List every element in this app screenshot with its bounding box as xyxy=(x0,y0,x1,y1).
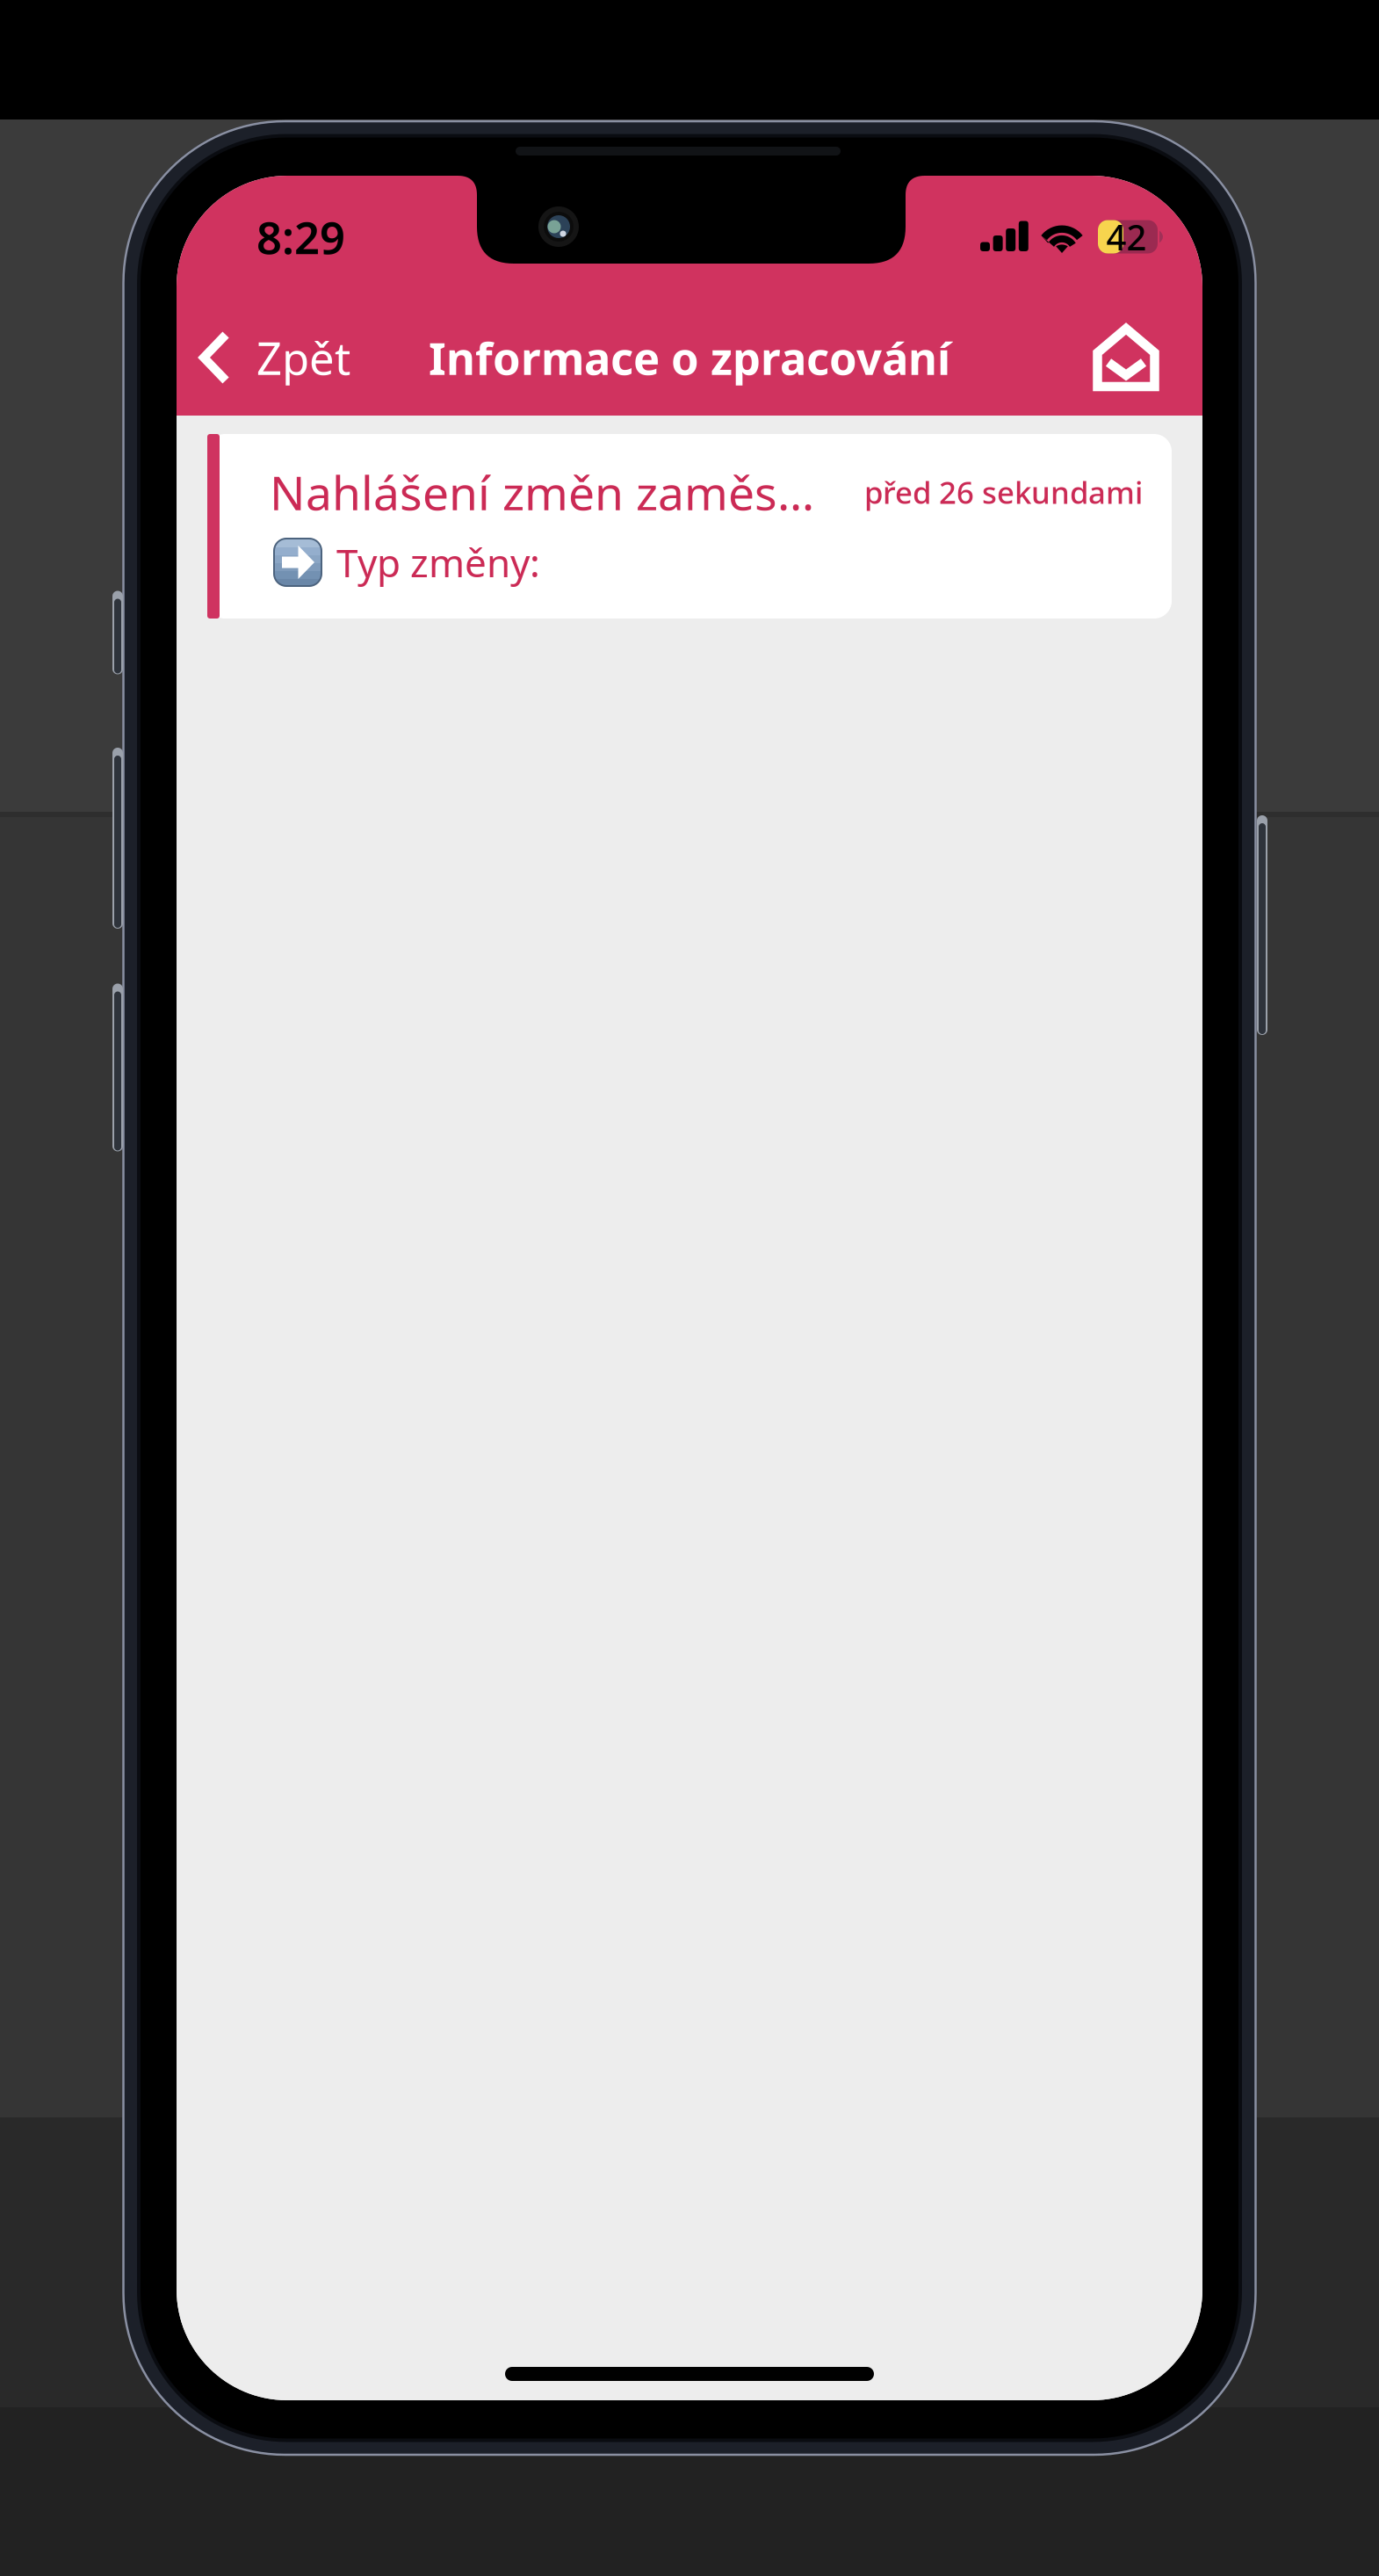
staticText: před 26 sekundami xyxy=(864,472,1143,512)
button[interactable]: Zpět xyxy=(177,316,370,399)
staticText: Zpět xyxy=(256,328,350,387)
button[interactable]: Nahlášení změn zaměs… xyxy=(207,434,1172,619)
staticText: Informace o zpracování xyxy=(429,328,950,387)
staticText: 42 xyxy=(1106,213,1147,260)
staticText: 8:29 xyxy=(256,207,345,266)
button[interactable]: Zprávy xyxy=(1072,311,1202,404)
staticText: Typ změny: xyxy=(336,537,540,588)
staticText: Nahlášení změn zaměs… xyxy=(270,461,814,523)
